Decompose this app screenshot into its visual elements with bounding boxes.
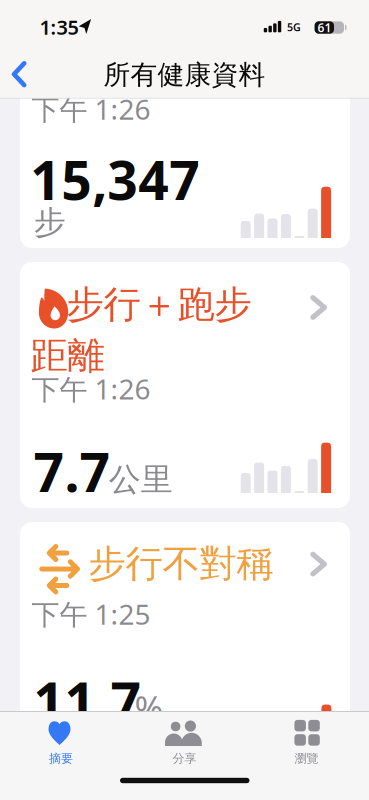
staticText: 下午 1:26 <box>32 370 151 407</box>
staticText: 下午 1:25 <box>32 595 151 632</box>
staticText: 分享 <box>172 751 196 766</box>
staticText: 15,347 <box>30 144 200 215</box>
button[interactable]: 步行不對稱 11.7 % <box>20 522 350 762</box>
staticText: 步行不對稱 <box>88 541 273 587</box>
staticText: 步 <box>34 203 66 242</box>
button[interactable]: Back <box>12 61 28 88</box>
staticText: 61 <box>317 20 331 36</box>
staticText: 7.7 <box>34 436 111 507</box>
button[interactable]: 分享 <box>139 713 229 769</box>
staticText: 所有健康資料 <box>103 58 265 91</box>
staticText: 公里 <box>109 460 173 499</box>
staticText: 摘要 <box>49 751 73 766</box>
staticText: 1:35 <box>39 14 78 40</box>
staticText: 距離 <box>30 333 104 379</box>
button[interactable]: 摘要 <box>16 713 106 769</box>
staticText: 下午 1:26 <box>32 90 151 128</box>
staticText: % <box>134 685 163 731</box>
staticText: 5G <box>287 20 301 34</box>
button[interactable]: 瀏覽 <box>261 713 351 769</box>
button[interactable]: 步數 15,347 步 <box>20 70 350 248</box>
button[interactable]: 步行 + 跑步距離 7.7 公里 <box>20 262 350 508</box>
staticText: 步行＋跑步 <box>67 282 252 327</box>
staticText: 11.7 <box>33 665 141 736</box>
staticText: 瀏覽 <box>294 751 318 766</box>
